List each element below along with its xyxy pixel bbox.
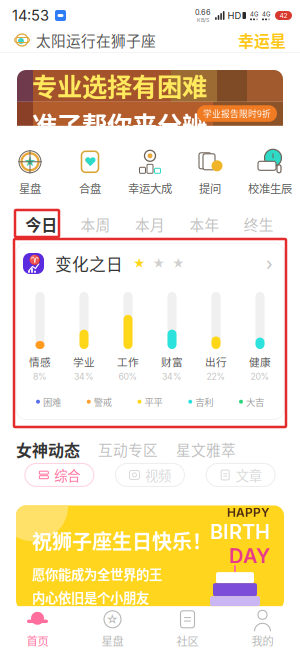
staticText: KB/S (197, 17, 209, 23)
staticText: 情感 (29, 354, 51, 369)
staticText: 星文雅萃 (176, 439, 236, 460)
button[interactable]: 幸运星 (238, 28, 286, 52)
staticText: 幸运星 (238, 28, 286, 52)
button[interactable]: 首页 (0, 608, 75, 650)
staticText: 终生 (244, 213, 274, 235)
staticText: 大吉 (246, 395, 264, 408)
staticText: 4G (250, 11, 258, 18)
staticText: 视频 (145, 465, 171, 485)
staticText: 综合 (54, 465, 80, 485)
staticText: 互动专区 (98, 439, 158, 460)
button[interactable]: 我的 (225, 608, 300, 650)
staticText: 文章 (236, 465, 262, 485)
staticText: 0.66 (195, 8, 211, 17)
button[interactable]: ★ (0, 150, 60, 196)
button[interactable]: 视频 (105, 463, 195, 486)
staticText: 合盘 (79, 180, 101, 196)
staticText: 困难 (43, 395, 61, 408)
staticText: 健康 (249, 354, 271, 369)
staticText: › (266, 253, 273, 274)
staticText: 平平 (144, 395, 162, 408)
staticText: ★ (152, 256, 165, 271)
staticText: 星盘 (19, 180, 41, 196)
staticText: 工作 (117, 354, 139, 369)
staticText: 34% (162, 371, 182, 382)
staticText: 今日 (25, 212, 57, 236)
button[interactable]: 社区 (150, 608, 225, 650)
staticText: ♥ (84, 154, 96, 169)
staticText: ★ (172, 256, 185, 271)
staticText: 首页 (26, 632, 48, 649)
staticText: 太阳运行在狮子座 (36, 29, 156, 51)
staticText: 34% (74, 371, 94, 382)
staticText: 社区 (176, 632, 198, 649)
staticText: 本月 (135, 213, 165, 235)
button[interactable]: 本周 (68, 211, 123, 237)
staticText: 20% (250, 371, 269, 382)
staticText: 女神动态 (16, 438, 80, 461)
staticText: 学业报告限时9折 (203, 107, 271, 120)
button[interactable]: ☆ (75, 608, 150, 650)
staticText: HAPPY (227, 505, 270, 520)
button[interactable]: 今日 (14, 211, 68, 237)
button[interactable]: 提问 (180, 150, 240, 196)
button[interactable]: 本月 (123, 211, 177, 237)
button[interactable]: 太阳运行在狮子座 (14, 29, 156, 51)
staticText: ☆ (106, 612, 119, 626)
staticText: HD (227, 10, 241, 21)
staticText: 14:53 (12, 7, 49, 24)
button[interactable]: 校准生辰 (240, 150, 300, 196)
button[interactable]: 女神动态 (16, 438, 80, 461)
staticText: 提问 (199, 180, 221, 196)
staticText: 准了帮你来分辨 (32, 105, 207, 142)
button[interactable]: 文章 (195, 463, 286, 486)
button[interactable]: 幸运大成 (120, 150, 180, 196)
staticText: 祝狮子座生日快乐！ (32, 526, 212, 555)
staticText: ★ (133, 256, 146, 271)
staticText: DAY (229, 544, 270, 568)
button[interactable]: HAPPY (0, 505, 300, 610)
staticText: 校准生辰 (248, 180, 292, 196)
button[interactable]: 本年 (177, 211, 232, 237)
staticText: 本周 (81, 213, 111, 235)
staticText: BIRTH (210, 520, 270, 544)
button[interactable]: 互动专区 (98, 439, 158, 460)
staticText: 42 (279, 11, 287, 20)
button[interactable]: ♥ (60, 150, 120, 196)
staticText: 学业 (73, 354, 95, 369)
staticText: 出行 (205, 354, 227, 369)
staticText: 吉利 (195, 395, 213, 408)
staticText: 60% (118, 371, 137, 382)
button[interactable]: ♈ (16, 243, 284, 284)
staticText: 我的 (251, 632, 273, 649)
staticText: 内心依旧是个小朋友 (32, 587, 149, 607)
staticText: 本年 (189, 213, 219, 235)
button[interactable]: 综合 (14, 463, 105, 486)
button[interactable]: 终生 (232, 211, 286, 237)
staticText: 财富 (161, 354, 183, 369)
staticText: 幸运大成 (128, 180, 172, 196)
staticText: 警戒 (94, 395, 112, 408)
staticText: ★ (23, 154, 36, 169)
staticText: 专业选择有困难 (32, 67, 207, 103)
staticText: 星盘 (101, 632, 123, 649)
staticText: 愿你能成为全世界的王 (32, 564, 162, 583)
staticText: 22% (206, 371, 225, 382)
button[interactable]: 星文雅萃 (176, 439, 236, 460)
staticText: 4G (262, 11, 270, 18)
staticText: 8% (33, 371, 47, 382)
staticText: ♈ (28, 254, 40, 265)
staticText: 变化之日 (55, 251, 123, 275)
button[interactable]: 专业选择有困难 (0, 70, 300, 134)
